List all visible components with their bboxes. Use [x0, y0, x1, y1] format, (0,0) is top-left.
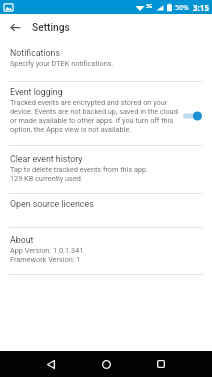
staticText: Specify your DTEK notifications.: [10, 59, 114, 68]
staticText: Open source licences: [10, 199, 94, 209]
staticText: Tracked events are encrypted and stored …: [10, 98, 178, 134]
staticText: Notifications: [10, 48, 61, 58]
staticText: 3:15: [193, 2, 209, 13]
button[interactable]: Recent apps: [150, 353, 172, 375]
staticText: Clear event history: [10, 154, 83, 164]
button[interactable]: Event logging: [0, 82, 212, 145]
button[interactable]: Home: [95, 353, 117, 375]
staticText: 3G: [146, 3, 153, 10]
staticText: About: [10, 235, 34, 245]
staticText: App Version: 1.0.1.341 Framework Version…: [10, 246, 84, 264]
button[interactable]: About: [0, 228, 212, 274]
staticText: Settings: [32, 22, 70, 34]
button[interactable]: Navigate up: [0, 14, 26, 41]
staticText: Event logging: [10, 87, 63, 97]
button[interactable]: Notifications: [0, 41, 212, 81]
button[interactable]: Back: [40, 353, 62, 375]
button[interactable]: Clear event history: [0, 146, 212, 193]
staticText: Tap to delete tracked events from this a…: [10, 165, 149, 183]
button[interactable]: Event logging toggle: [183, 109, 202, 123]
staticText: 56%: [175, 3, 189, 13]
button[interactable]: Open source licences: [0, 194, 212, 227]
